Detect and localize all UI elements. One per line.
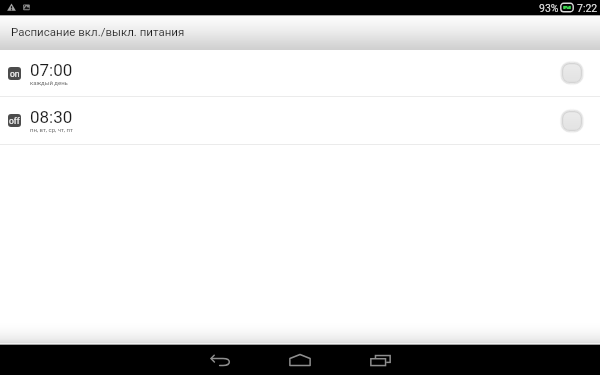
staticText: каждый день: [30, 79, 68, 86]
button[interactable]: Back: [180, 345, 260, 375]
staticText: 07:00: [30, 60, 73, 80]
button[interactable]: off: [0, 97, 600, 144]
button[interactable]: Toggle schedule: [562, 111, 582, 131]
staticText: on: [10, 69, 20, 79]
button[interactable]: on: [0, 50, 600, 96]
button[interactable]: Recent apps: [340, 345, 420, 375]
staticText: пн, вт, ср, чт, пт: [30, 126, 73, 133]
staticText: 08:30: [30, 107, 73, 127]
button[interactable]: Toggle schedule: [562, 63, 582, 83]
staticText: Расписание вкл./выкл. питания: [11, 25, 185, 38]
button[interactable]: Home: [260, 345, 340, 375]
staticText: 7:22: [577, 2, 598, 14]
staticText: off: [9, 116, 20, 126]
staticText: 93%: [539, 2, 559, 14]
